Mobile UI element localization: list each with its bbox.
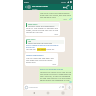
- staticText: 10:24: [63, 18, 68, 20]
- button[interactable]: Voice call: [66, 4, 70, 10]
- staticText: You: [28, 40, 31, 42]
- other: Attach file: [59, 86, 61, 88]
- staticText: Thanks! Will check if you can set up the…: [40, 71, 72, 82]
- button[interactable]: Sarah Chen: [25, 37, 65, 52]
- staticText: the report: [37, 48, 46, 51]
- button[interactable]: Back: [24, 4, 27, 10]
- staticText: I've got a check and confirmation: [28, 25, 55, 27]
- staticText: VoLTE: [61, 1, 66, 3]
- staticText: today ok: [46, 48, 55, 51]
- staticText: Health Department: [26, 54, 44, 57]
- button[interactable]: Emoji: [24, 84, 65, 90]
- staticText: 09:41: [24, 1, 30, 4]
- button[interactable]: I've got a check and confirmation note f…: [39, 11, 73, 21]
- button[interactable]: Home: [44, 90, 52, 96]
- other: Emoji: [25, 86, 28, 89]
- button[interactable]: Back: [30, 90, 38, 96]
- button[interactable]: Record voice message: [66, 84, 72, 90]
- staticText: Are you need the new gear and the single…: [26, 57, 57, 63]
- staticText: I've got a check and confirmation note f…: [40, 12, 72, 18]
- staticText: Dr. Sarah Chen: [32, 5, 49, 8]
- button[interactable]: https://m.example.org/ab: [39, 67, 73, 83]
- staticText: 10:28: [52, 63, 57, 65]
- staticText: Sarah Chen: [26, 38, 36, 40]
- staticText: Sure ok. The added I'm awaiting the tria…: [26, 27, 59, 33]
- staticText: online: [32, 8, 38, 10]
- button[interactable]: Health Department: [25, 53, 58, 66]
- button[interactable]: Recent apps: [59, 90, 67, 96]
- button[interactable]: Sarah Chen: [25, 22, 60, 36]
- button[interactable]: More options: [70, 4, 73, 10]
- button[interactable]: Video call: [62, 4, 66, 10]
- staticText: https://m.example.org/ab: [40, 68, 63, 71]
- staticText: Let me see: [26, 48, 37, 51]
- staticText: 10:26: [54, 33, 59, 35]
- staticText: Sarah Chen: [28, 23, 38, 25]
- staticText: Message: [29, 86, 38, 89]
- staticText: https://www.healthrecords.example/portal…: [26, 44, 64, 48]
- staticText: Here's the latest lab result link: [28, 42, 52, 44]
